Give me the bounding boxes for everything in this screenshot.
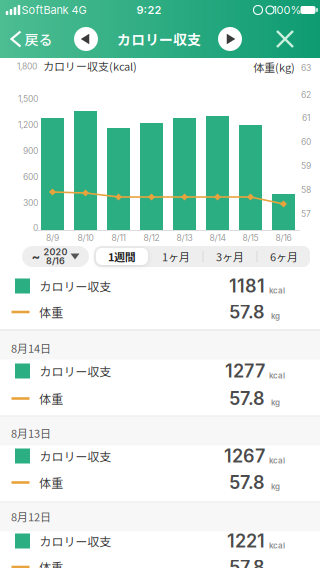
staticText: 2020 xyxy=(43,247,67,257)
staticText: 1,500 xyxy=(18,94,38,104)
staticText: 63 xyxy=(301,63,311,73)
staticText: 体重 xyxy=(39,390,63,407)
staticText: 1週間 xyxy=(108,248,136,264)
button[interactable]: 前へ xyxy=(74,27,98,51)
staticText: カロリー収支 xyxy=(39,532,111,550)
staticText: 8/9 xyxy=(46,233,59,243)
staticText: 1,200 xyxy=(18,120,38,130)
staticText: 100% xyxy=(272,3,301,17)
staticText: 8/13 xyxy=(176,233,192,243)
staticText: kg xyxy=(271,482,280,491)
staticText: SoftBank xyxy=(21,3,68,17)
staticText: 600 xyxy=(23,172,38,182)
staticText: カロリー収支(kcal) xyxy=(43,58,137,74)
staticText: kcal xyxy=(269,371,285,380)
staticText: 6ヶ月 xyxy=(270,248,298,264)
staticText: カロリー収支 xyxy=(39,362,111,380)
staticText: 1ヶ月 xyxy=(162,248,190,264)
staticText: 3ヶ月 xyxy=(216,248,244,264)
staticText: 8/16 xyxy=(275,233,291,243)
staticText: 58 xyxy=(301,185,311,195)
staticText: 体重(kg) xyxy=(253,59,295,75)
button[interactable]: 1ヶ月 xyxy=(150,246,202,267)
button[interactable]: 1週間 xyxy=(96,248,148,265)
staticText: 57.8 xyxy=(229,556,265,568)
staticText: 300 xyxy=(23,198,38,208)
staticText: 57.8 xyxy=(229,388,265,409)
staticText: 体重 xyxy=(39,474,63,491)
staticText: 57.8 xyxy=(229,472,265,493)
staticText: 戻る xyxy=(24,29,52,49)
staticText: 1221 xyxy=(227,530,265,552)
button[interactable]: 戻る xyxy=(11,29,52,49)
staticText: 8/14 xyxy=(209,233,225,243)
staticText: 8/15 xyxy=(242,233,258,243)
button[interactable]: 閉じる xyxy=(277,31,293,47)
staticText: 57.8 xyxy=(229,301,265,323)
staticText: 1277 xyxy=(225,360,265,382)
staticText: 8月14日 xyxy=(11,340,51,356)
staticText: 8/12 xyxy=(143,233,159,243)
staticText: ~ xyxy=(31,249,40,264)
staticText: カロリー収支 xyxy=(39,277,111,295)
staticText: kg xyxy=(271,311,280,321)
button[interactable]: 3ヶ月 xyxy=(204,246,256,267)
staticText: 1267 xyxy=(224,445,265,467)
staticText: kcal xyxy=(269,286,285,295)
staticText: 体重 xyxy=(39,303,63,321)
staticText: 0 xyxy=(33,223,38,233)
staticText: 9:22 xyxy=(136,3,161,17)
button[interactable]: 6ヶ月 xyxy=(258,246,310,267)
staticText: kg xyxy=(271,398,280,407)
staticText: 8月12日 xyxy=(11,508,51,524)
staticText: 体重 xyxy=(39,558,63,568)
staticText: kcal xyxy=(269,541,285,550)
staticText: 61 xyxy=(302,113,310,123)
staticText: 4G xyxy=(71,3,86,17)
staticText: 62 xyxy=(301,90,311,100)
staticText: 1,800 xyxy=(17,61,37,72)
staticText: 59 xyxy=(301,161,311,171)
staticText: 8/11 xyxy=(111,233,125,243)
staticText: 900 xyxy=(23,146,38,156)
staticText: カロリー収支 xyxy=(117,29,201,49)
staticText: 8/10 xyxy=(77,233,93,243)
staticText: 57 xyxy=(301,209,311,219)
staticText: 60 xyxy=(301,137,311,147)
staticText: 8月13日 xyxy=(11,425,51,441)
button[interactable]: 期間を選択 xyxy=(22,246,89,267)
staticText: 8/16 xyxy=(46,255,65,266)
staticText: kcal xyxy=(269,456,285,465)
button[interactable]: 次へ xyxy=(218,27,242,51)
staticText: 1181 xyxy=(229,275,265,297)
staticText: カロリー収支 xyxy=(39,447,111,465)
